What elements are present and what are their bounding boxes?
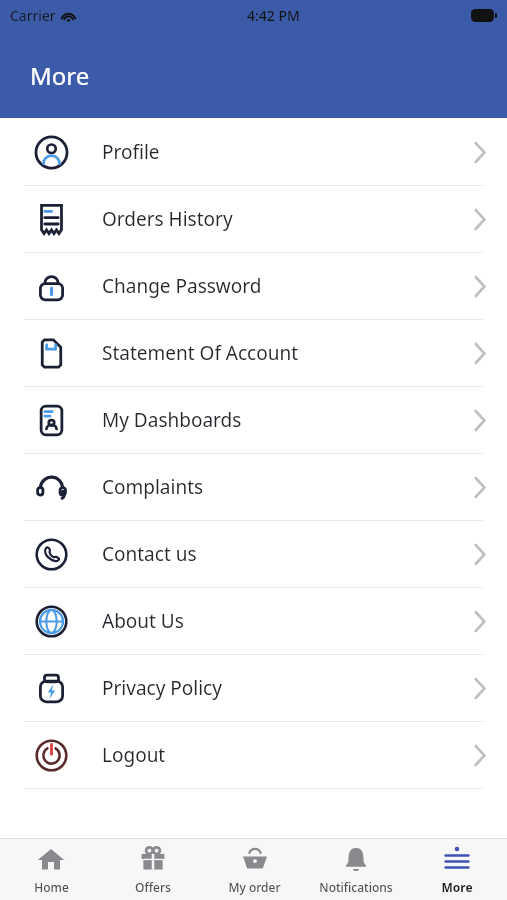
button[interactable]: My order	[204, 838, 305, 900]
button[interactable]: Change Password	[0, 253, 507, 319]
button[interactable]: Privacy Policy	[0, 655, 507, 721]
staticText: 4:42 PM	[247, 6, 300, 25]
staticText: Notifications	[319, 879, 393, 895]
staticText: My Dashboards	[102, 407, 242, 433]
staticText: Home	[34, 879, 69, 895]
staticText: Orders History	[102, 206, 233, 232]
button[interactable]: Notifications	[305, 838, 406, 900]
button[interactable]: My Dashboards	[0, 387, 507, 453]
button[interactable]: Profile	[0, 119, 507, 185]
button[interactable]: Orders History	[0, 186, 507, 252]
staticText: Statement Of Account	[102, 340, 299, 366]
button[interactable]: Offers	[102, 838, 204, 900]
button[interactable]: Statement Of Account	[0, 320, 507, 386]
staticText: Change Password	[102, 273, 262, 299]
staticText: Complaints	[102, 474, 204, 500]
button[interactable]: More	[406, 838, 507, 900]
staticText: Logout	[102, 742, 166, 768]
staticText: Profile	[102, 139, 160, 165]
staticText: Privacy Policy	[102, 675, 222, 701]
button[interactable]: Contact us	[0, 521, 507, 587]
staticText: More	[441, 879, 473, 895]
staticText: Offers	[135, 879, 171, 895]
button[interactable]: Complaints	[0, 454, 507, 520]
staticText: Carrier	[10, 6, 56, 25]
staticText: About Us	[102, 608, 184, 634]
button[interactable]: About Us	[0, 588, 507, 654]
staticText: Contact us	[102, 541, 197, 567]
button[interactable]: Home	[0, 838, 102, 900]
staticText: More	[30, 59, 90, 92]
button[interactable]: Logout	[0, 722, 507, 788]
staticText: My order	[228, 879, 281, 895]
